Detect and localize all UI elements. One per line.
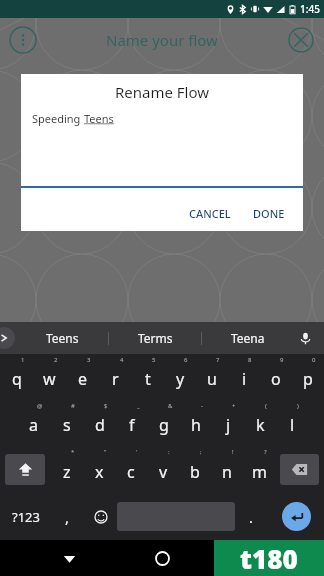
staticText: w	[43, 368, 56, 390]
button[interactable]: '	[115, 446, 147, 493]
button[interactable]: $	[83, 400, 116, 446]
staticText: g	[159, 414, 169, 436]
button[interactable]: 4	[99, 354, 132, 400]
button[interactable]: #	[50, 400, 83, 446]
button[interactable]: 9	[260, 354, 292, 400]
button[interactable]: CANCEL	[183, 202, 237, 225]
staticText: Teens	[46, 330, 79, 346]
staticText: 6	[184, 356, 188, 364]
button[interactable]: -	[180, 400, 212, 446]
button[interactable]: Voice input	[293, 326, 317, 350]
button[interactable]: Enter	[282, 502, 311, 531]
staticText: f	[129, 414, 135, 436]
staticText: Name your flow	[106, 30, 218, 50]
staticText: i	[242, 368, 247, 390]
button[interactable]: DONE	[247, 202, 291, 225]
button[interactable]: _	[116, 400, 148, 446]
button[interactable]: *	[50, 446, 83, 493]
button[interactable]: Expand suggestions	[0, 327, 15, 349]
staticText: r	[112, 368, 119, 390]
staticText: _	[137, 402, 140, 410]
staticText: e	[78, 368, 88, 390]
staticText: s	[63, 414, 71, 436]
button[interactable]: ?	[243, 446, 275, 493]
staticText: m	[252, 461, 267, 483]
staticText: ?	[264, 448, 267, 456]
button[interactable]: Hide keyboard	[56, 545, 82, 571]
button[interactable]: 1	[0, 354, 33, 400]
button[interactable]: "	[83, 446, 115, 493]
staticText: Teena	[231, 330, 265, 346]
button[interactable]: (	[244, 400, 276, 446]
button[interactable]: 5	[132, 354, 164, 400]
staticText: b	[190, 461, 200, 483]
staticText: p	[303, 368, 313, 390]
staticText: 1:45	[300, 2, 320, 16]
staticText: Terms	[138, 330, 173, 346]
button[interactable]: 8	[228, 354, 260, 400]
staticText: #	[71, 402, 75, 410]
staticText: j	[226, 414, 231, 436]
staticText: '	[136, 448, 138, 456]
staticText: c	[127, 461, 135, 483]
staticText: 2	[54, 356, 58, 364]
staticText: x	[95, 461, 104, 483]
staticText: ;	[200, 448, 202, 456]
staticText: a	[29, 414, 38, 436]
button[interactable]: 0	[292, 354, 324, 400]
button[interactable]: .	[235, 493, 268, 540]
button[interactable]: )	[276, 400, 308, 446]
staticText: 9	[280, 356, 284, 364]
staticText: DONE	[253, 206, 285, 221]
staticText: 1	[21, 356, 25, 364]
staticText: 5	[152, 356, 156, 364]
button[interactable]: @	[17, 400, 50, 446]
staticText: 7	[216, 356, 220, 364]
staticText: +	[232, 402, 236, 410]
button[interactable]: Terms	[109, 322, 201, 354]
button[interactable]: Teens	[16, 322, 108, 354]
staticText: &	[168, 402, 173, 410]
button[interactable]: More options	[8, 25, 38, 55]
staticText: Speeding	[32, 111, 84, 126]
button[interactable]: 7	[196, 354, 228, 400]
button[interactable]: Backspace	[280, 454, 319, 485]
button[interactable]: 3	[66, 354, 99, 400]
staticText: 4	[120, 356, 124, 364]
staticText: *	[71, 448, 75, 456]
staticText: t	[145, 368, 151, 390]
button[interactable]: 2	[33, 354, 66, 400]
staticText: z	[63, 461, 71, 483]
staticText: ?123	[12, 508, 40, 526]
button[interactable]: +	[212, 400, 244, 446]
staticText: o	[271, 368, 281, 390]
staticText: $	[104, 402, 108, 410]
staticText: :	[168, 448, 170, 456]
staticText: h	[191, 414, 201, 436]
button[interactable]: ;	[179, 446, 211, 493]
button[interactable]: Emoji	[84, 493, 117, 540]
button[interactable]: Teena	[202, 322, 294, 354]
staticText: )	[297, 402, 299, 410]
staticText: 8	[248, 356, 252, 364]
button[interactable]: ,	[51, 493, 84, 540]
staticText: -	[201, 402, 203, 410]
staticText: !	[232, 448, 234, 456]
button[interactable]: &	[148, 400, 180, 446]
staticText: ,	[65, 507, 70, 527]
staticText: d	[95, 414, 105, 436]
staticText: 3	[87, 356, 91, 364]
staticText: y	[176, 368, 185, 390]
staticText: u	[207, 368, 217, 390]
staticText: l	[290, 414, 295, 436]
staticText: n	[222, 461, 232, 483]
button[interactable]: :	[147, 446, 179, 493]
button[interactable]: 6	[164, 354, 196, 400]
staticText: @	[37, 402, 43, 410]
button[interactable]: ?123	[0, 493, 51, 540]
button[interactable]: Home	[149, 545, 175, 571]
button[interactable]: Shift	[5, 454, 45, 485]
button[interactable]: Close	[286, 25, 316, 55]
button[interactable]: !	[211, 446, 243, 493]
